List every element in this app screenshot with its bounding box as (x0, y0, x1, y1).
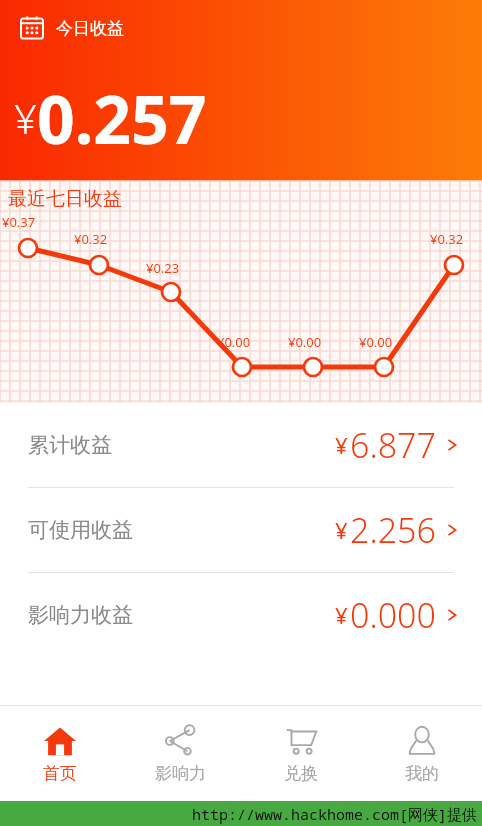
staticText: ¥0.32 (74, 230, 108, 248)
staticText: ¥0.32 (430, 230, 464, 248)
staticText: 2.256 (350, 507, 436, 553)
button[interactable]: Calendar (20, 16, 124, 40)
staticText: 可使用收益 (28, 517, 133, 543)
staticText: ¥ (335, 515, 348, 545)
button[interactable]: 首页 (0, 706, 120, 801)
staticText: ¥0.00 (217, 333, 251, 351)
staticText: 0.000 (350, 592, 436, 638)
button[interactable]: 可使用收益 (0, 488, 482, 572)
staticText: 累计收益 (28, 432, 112, 458)
staticText: 我的 (405, 763, 439, 784)
staticText: ¥ (335, 430, 348, 460)
staticText: 首页 (43, 763, 77, 784)
staticText: ¥ (335, 600, 348, 630)
staticText: 影响力收益 (28, 602, 133, 628)
button[interactable]: 影响力收益 (0, 573, 482, 657)
staticText: 0.257 (37, 73, 207, 163)
staticText: ¥0.00 (359, 333, 393, 351)
staticText: http://www.hackhome.com[网侠]提供 (192, 804, 478, 824)
staticText: 影响力 (155, 763, 206, 784)
button[interactable]: 我的 (361, 706, 482, 801)
staticText: 今日收益 (56, 18, 124, 39)
button[interactable]: 兑换 (240, 706, 361, 801)
staticText: 最近七日收益 (8, 187, 122, 211)
other: Calendar (20, 16, 44, 40)
button[interactable]: 影响力 (120, 706, 240, 801)
staticText: ¥0.00 (288, 333, 322, 351)
staticText: 兑换 (284, 763, 318, 784)
staticText: ¥0.23 (146, 259, 180, 277)
staticText: ¥ (14, 91, 37, 145)
button[interactable]: 累计收益 (0, 403, 482, 487)
staticText: 6.877 (350, 422, 436, 468)
staticText: ¥0.37 (2, 213, 36, 231)
